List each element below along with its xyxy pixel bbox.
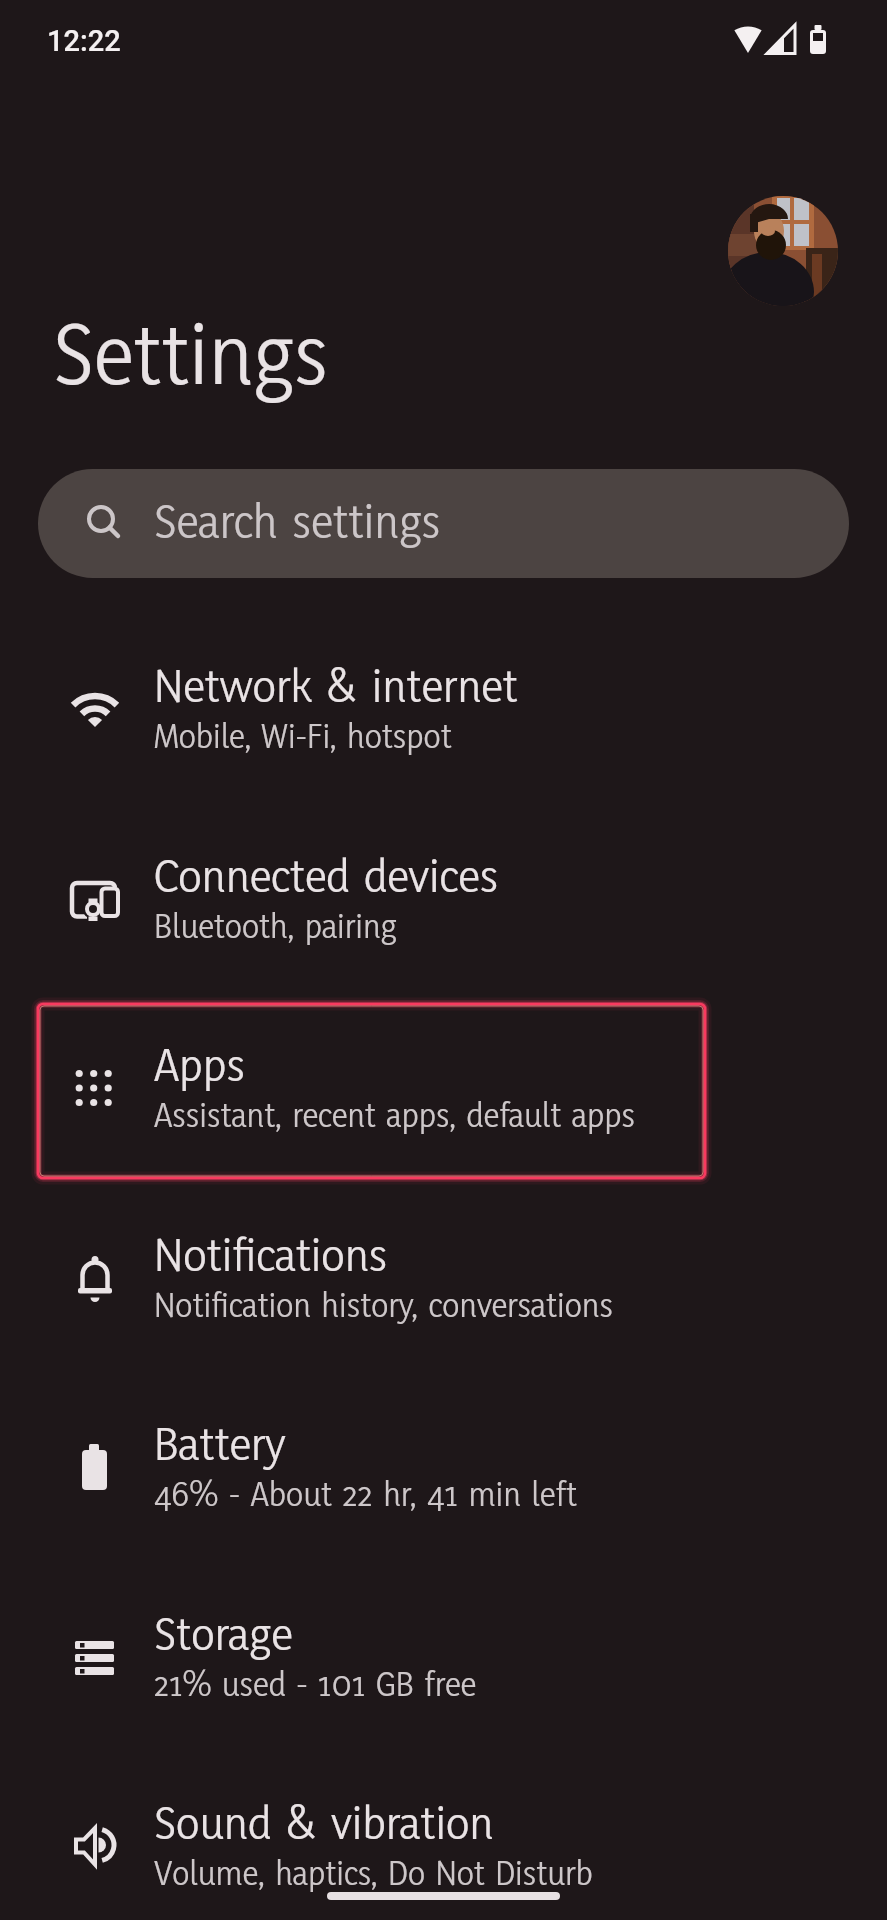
staticText: Notification history, conversations	[154, 1283, 613, 1331]
button[interactable]: Notifications	[0, 1194, 887, 1384]
staticText: 12:22	[47, 24, 121, 58]
button[interactable]: Apps	[0, 1004, 887, 1194]
staticText: Storage	[154, 1603, 293, 1668]
staticText: Bluetooth, pairing	[154, 904, 397, 952]
staticText: Assistant, recent apps, default apps	[154, 1093, 635, 1141]
staticText: Notifications	[154, 1224, 388, 1289]
staticText: Search settings	[154, 490, 441, 556]
button[interactable]: Battery	[0, 1383, 887, 1573]
staticText: Network & internet	[154, 655, 518, 720]
staticText: 21% used - 101 GB free	[154, 1662, 477, 1710]
staticText: Mobile, Wi-Fi, hotspot	[154, 714, 452, 762]
button[interactable]: Network & internet	[0, 625, 887, 815]
button[interactable]: Storage	[0, 1573, 887, 1763]
staticText: Volume, haptics, Do Not Disturb	[154, 1851, 593, 1899]
button[interactable]: Sound & vibration	[0, 1762, 887, 1920]
staticText: Battery	[154, 1413, 286, 1478]
staticText: Settings	[53, 298, 329, 418]
staticText: Apps	[154, 1034, 245, 1099]
button[interactable]	[728, 196, 838, 306]
button[interactable]: Search settings	[38, 469, 849, 578]
button[interactable]: Connected devices	[0, 815, 887, 1005]
staticText: 46% - About 22 hr, 41 min left	[154, 1472, 577, 1520]
staticText: Connected devices	[154, 845, 499, 910]
staticText: Sound & vibration	[154, 1792, 494, 1857]
